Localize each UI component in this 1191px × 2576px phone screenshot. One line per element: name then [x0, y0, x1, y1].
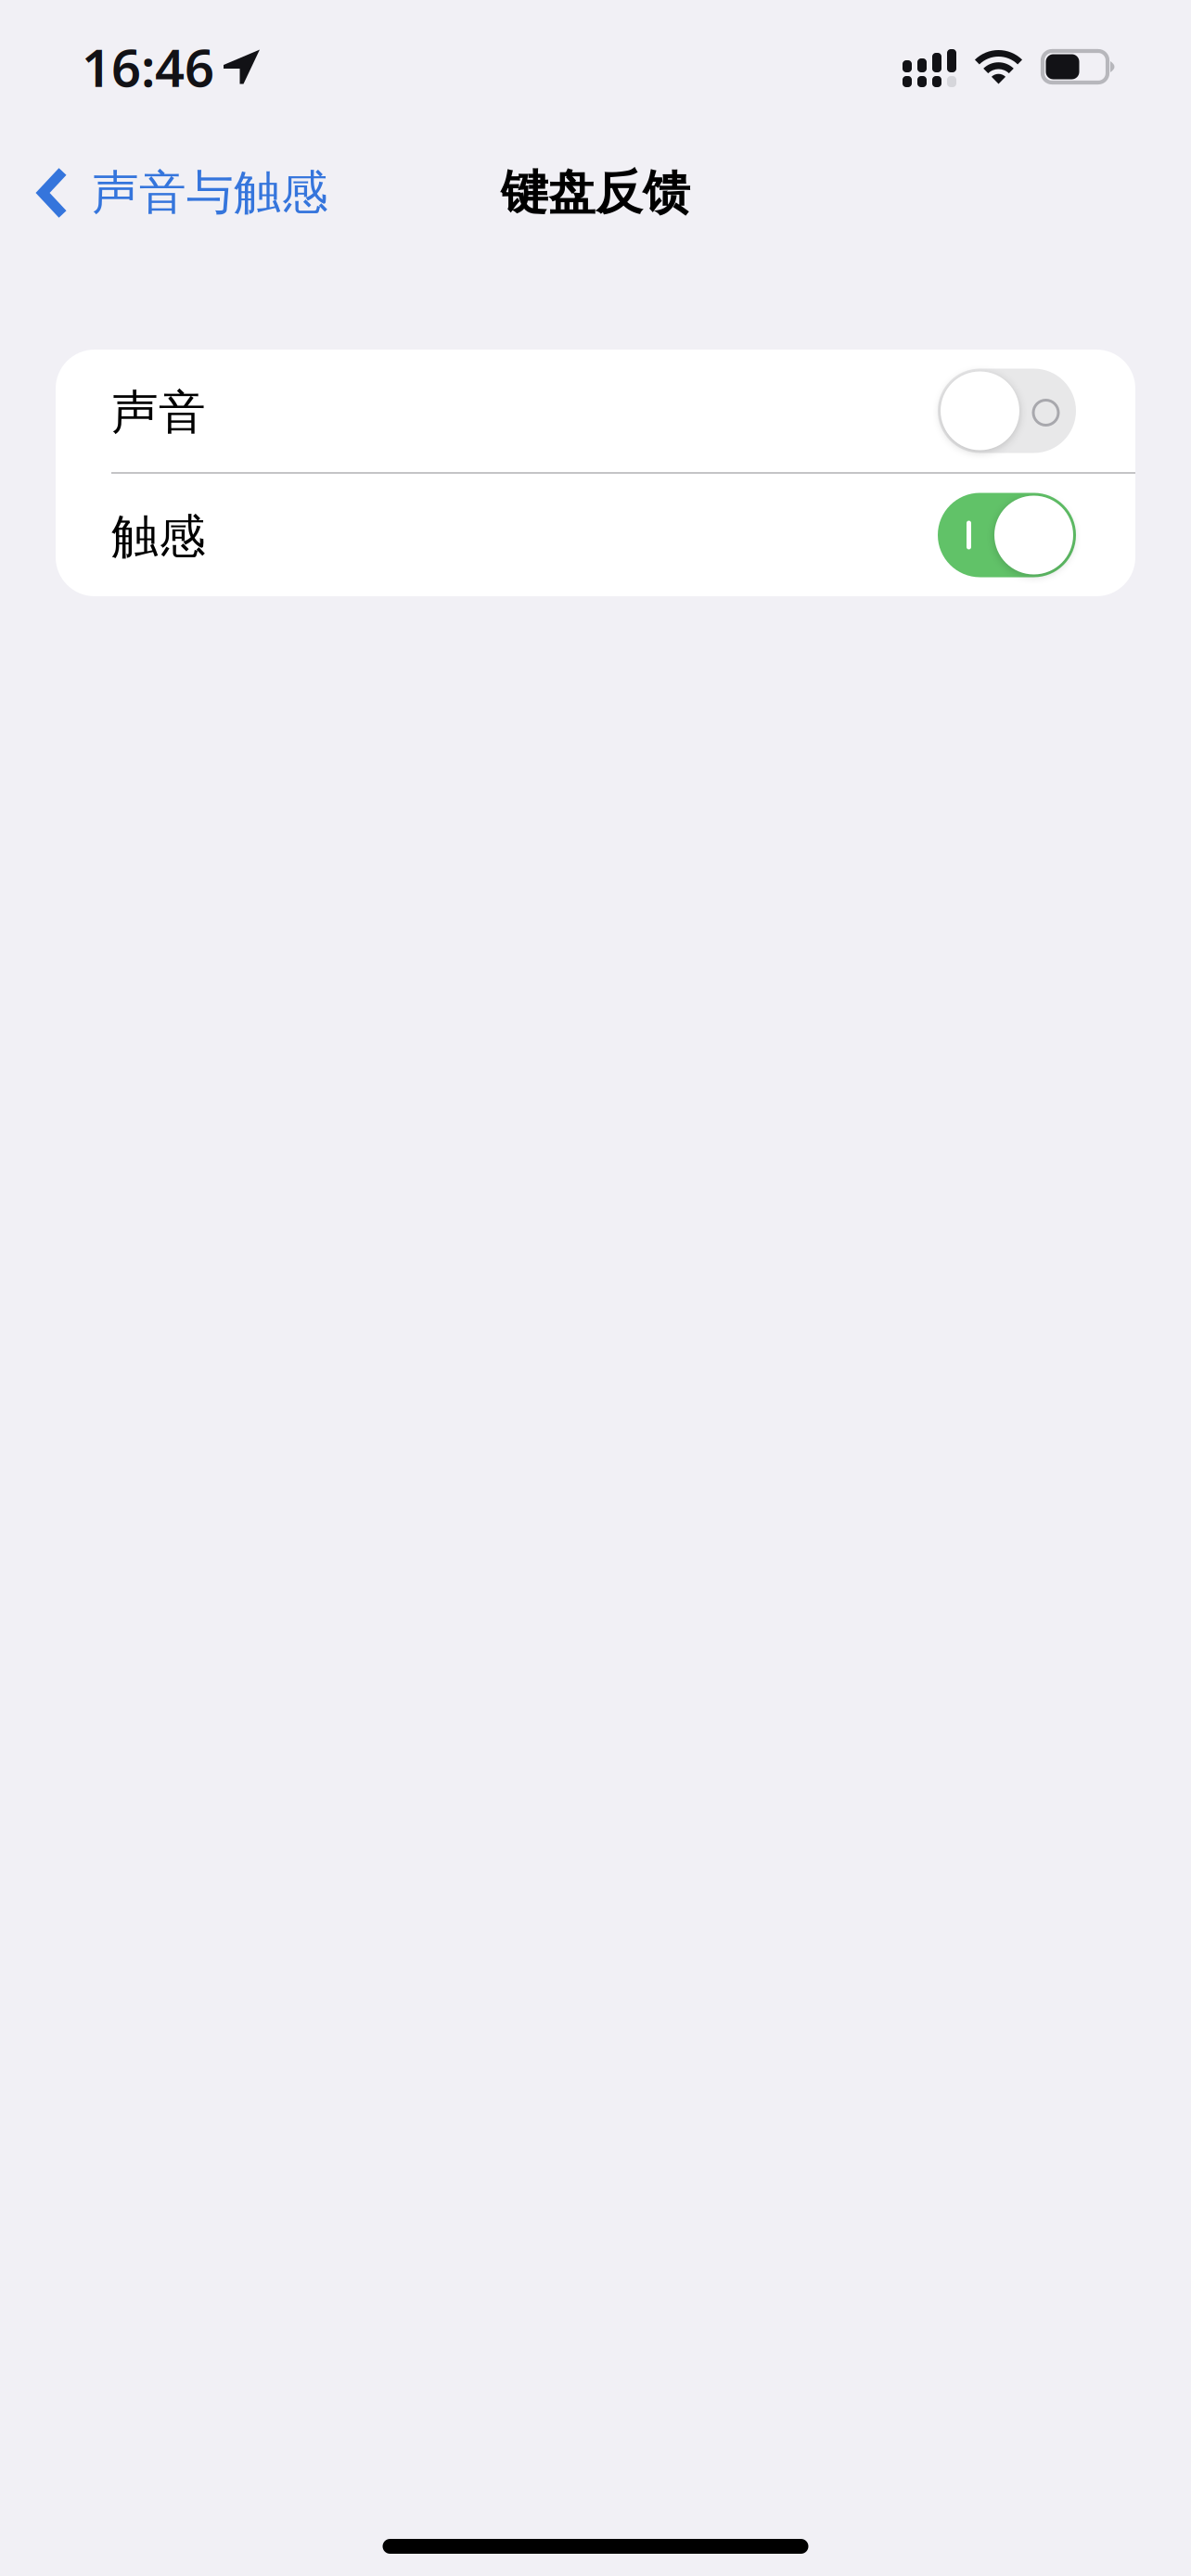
staticText: 声音 — [111, 384, 206, 441]
button[interactable]: 声音 — [56, 350, 1135, 472]
staticText: 声音与触感 — [92, 164, 328, 222]
staticText: 16:46 — [82, 32, 214, 101]
staticText: 键盘反馈 — [501, 164, 690, 222]
button[interactable]: 触感 — [56, 474, 1135, 596]
staticText: 触感 — [111, 508, 206, 566]
button[interactable]: 返回 声音与触感 — [0, 136, 352, 249]
